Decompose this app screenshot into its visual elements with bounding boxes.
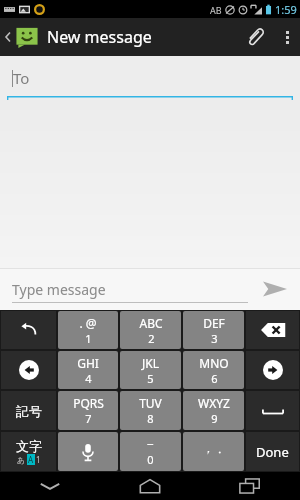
button[interactable]: Voice input [58,432,118,471]
button[interactable]: undo [1,311,56,349]
staticText: MNO [199,355,229,371]
button[interactable]: WXYZ [183,391,244,430]
button[interactable]: Cursor left [1,351,56,389]
button[interactable]: Backspace [246,311,299,349]
button[interactable]: Send [256,270,294,308]
button[interactable]: ABC [120,311,181,349]
staticText: TUV [139,395,162,411]
button[interactable]: Space [246,391,299,430]
button[interactable]: . @ [58,311,118,349]
staticText: WXYZ [198,395,230,411]
button[interactable]: MNO [183,351,244,389]
staticText: 5 [147,371,154,386]
button[interactable]: GHI [58,351,118,389]
staticText: 1 [36,454,41,465]
staticText: DEF [203,315,225,331]
staticText: Done [256,443,289,461]
staticText: 4 [85,371,92,386]
staticText: PQRS [73,395,104,411]
button[interactable]: JKL [120,351,181,389]
other: Voice input [81,442,95,462]
staticText: New message [47,26,152,48]
staticText: 1:59 [275,2,297,17]
button[interactable]: 記号 [1,391,56,430]
button[interactable]: Back [2,25,154,49]
staticText: 8 [147,411,154,426]
staticText: 3 [211,331,218,346]
staticText: 記号 [16,403,42,419]
button[interactable]: Home [100,472,200,500]
staticText: 9 [211,411,218,426]
button[interactable]: TUV [120,391,181,430]
staticText: 2 [148,331,155,346]
staticText: 7 [85,411,92,426]
button[interactable]: − [120,432,181,471]
button[interactable]: 文字 [1,432,56,471]
staticText: Type message [12,280,106,299]
button[interactable]: Cursor right [246,351,299,389]
staticText: ABC [139,315,163,331]
button[interactable]: More options [274,18,300,56]
staticText: . @ [79,315,97,331]
button[interactable]: To [0,56,300,100]
staticText: AB [210,4,222,16]
button[interactable]: PQRS [58,391,118,430]
button[interactable]: Recent apps [200,472,300,500]
button[interactable]: Hide keyboard [0,472,100,500]
staticText: GHI [77,355,99,371]
staticText: 0 [147,452,154,467]
button[interactable]: Attach [236,18,274,56]
button[interactable]: Done [246,432,299,471]
staticText: 1 [85,331,92,346]
staticText: 文字 [16,438,42,454]
staticText: JKL [142,355,159,371]
button[interactable]: Type message [12,274,248,304]
other: Back [4,30,12,44]
staticText: あ [17,455,26,465]
staticText: 6 [211,371,218,386]
button[interactable] [183,432,244,471]
staticText: − [147,436,154,452]
staticText: To [13,68,30,88]
staticText: A [28,454,34,465]
button[interactable]: DEF [183,311,244,349]
